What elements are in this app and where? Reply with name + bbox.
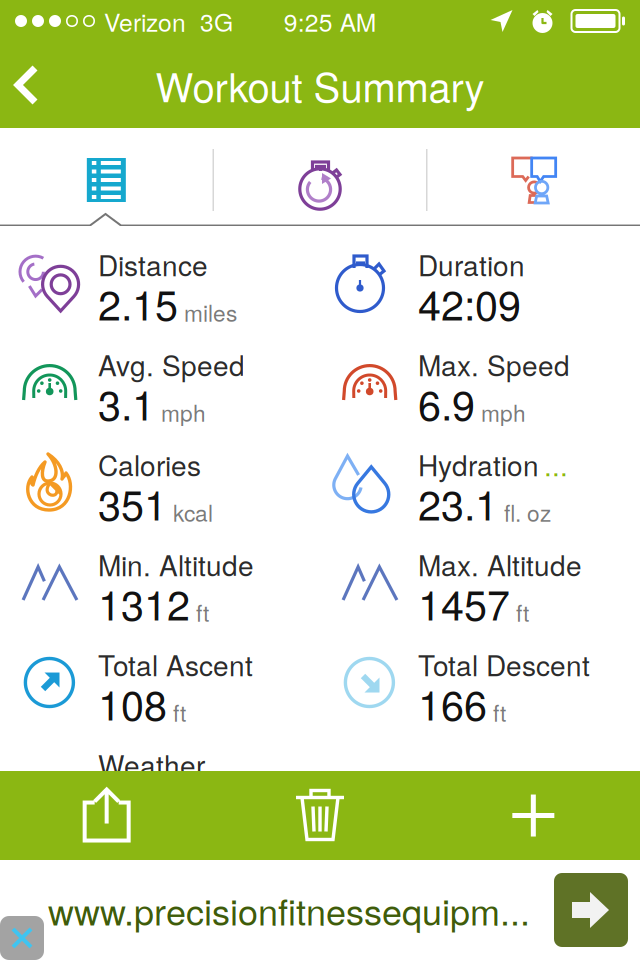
button[interactable]: Back bbox=[0, 44, 67, 126]
staticText: Total Ascent bbox=[98, 644, 253, 684]
staticText: Verizon bbox=[104, 3, 186, 39]
staticText: 23.1 bbox=[418, 473, 498, 532]
staticText: 1457 bbox=[418, 573, 510, 632]
staticText: Duration bbox=[418, 244, 525, 284]
staticText: Max. Altitude bbox=[418, 544, 582, 584]
staticText: 2.15 bbox=[98, 273, 178, 332]
staticText: ft bbox=[173, 696, 186, 728]
staticText: ft bbox=[493, 696, 506, 728]
staticText: mph bbox=[481, 396, 526, 428]
button[interactable]: Laps bbox=[214, 137, 426, 223]
staticText: Calories bbox=[98, 444, 201, 484]
staticText: 1312 bbox=[98, 573, 190, 632]
button[interactable]: Go bbox=[554, 873, 628, 947]
staticText: 9:25 AM bbox=[284, 3, 377, 39]
staticText: ... bbox=[544, 444, 568, 484]
staticText: ft bbox=[516, 596, 529, 628]
button[interactable]: Share with friends bbox=[427, 137, 640, 223]
staticText: Hydration bbox=[418, 444, 539, 484]
staticText: 351 bbox=[98, 473, 167, 532]
staticText: Max. Speed bbox=[418, 344, 570, 384]
staticText: 3.1 bbox=[98, 373, 155, 432]
staticText: 3G bbox=[200, 3, 233, 39]
button[interactable]: Close ad bbox=[0, 916, 44, 960]
staticText: 6.9 bbox=[418, 373, 475, 432]
staticText: Total Descent bbox=[418, 644, 590, 684]
button[interactable]: www.precisionfitnessequipm... bbox=[0, 862, 530, 958]
button[interactable]: Delete bbox=[213, 771, 427, 860]
staticText: 42:09 bbox=[418, 273, 521, 332]
staticText: mph bbox=[161, 396, 206, 428]
staticText: Weather bbox=[98, 744, 205, 784]
staticText: Workout Summary bbox=[155, 56, 484, 114]
button[interactable]: Share bbox=[0, 771, 213, 860]
staticText: Distance bbox=[98, 244, 208, 284]
staticText: ft bbox=[196, 596, 209, 628]
button[interactable]: Summary bbox=[0, 137, 213, 223]
staticText: kcal bbox=[173, 496, 213, 528]
staticText: miles bbox=[184, 296, 237, 328]
staticText: Min. Altitude bbox=[98, 544, 254, 584]
staticText: Avg. Speed bbox=[98, 344, 245, 384]
staticText: fl. oz bbox=[504, 496, 551, 528]
staticText: 166 bbox=[418, 673, 487, 732]
button[interactable]: Add bbox=[427, 771, 640, 860]
staticText: 108 bbox=[98, 673, 167, 732]
staticText: www.precisionfitnessequipm... bbox=[48, 884, 530, 936]
